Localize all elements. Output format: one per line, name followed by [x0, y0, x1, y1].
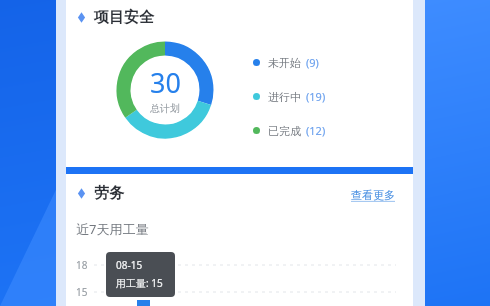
button[interactable]: 查看更多 — [349, 186, 397, 204]
button[interactable]: 劳务 — [76, 184, 124, 203]
staticText: 18 — [76, 258, 88, 272]
staticText: 查看更多 — [351, 188, 395, 202]
button[interactable]: 进行中 — [253, 89, 326, 104]
staticText: (19) — [306, 89, 326, 104]
staticText: 近7天用工量 — [76, 220, 149, 238]
staticText: (9) — [306, 55, 319, 70]
staticText: 已完成 — [268, 124, 301, 138]
staticText: 劳务 — [94, 184, 124, 203]
button[interactable]: 项目安全 — [76, 8, 154, 27]
staticText: (12) — [306, 123, 326, 138]
button[interactable]: 未开始 — [253, 55, 319, 70]
staticText: 08-15 — [116, 258, 143, 272]
staticText: 30 — [150, 64, 181, 101]
button[interactable]: 已完成 — [253, 123, 326, 138]
staticText: 项目安全 — [94, 8, 154, 27]
staticText: 进行中 — [268, 90, 301, 104]
staticText: 未开始 — [268, 56, 301, 70]
staticText: 15 — [76, 285, 88, 299]
staticText: 总计划 — [150, 102, 180, 115]
staticText: 用工量: 15 — [116, 276, 163, 290]
